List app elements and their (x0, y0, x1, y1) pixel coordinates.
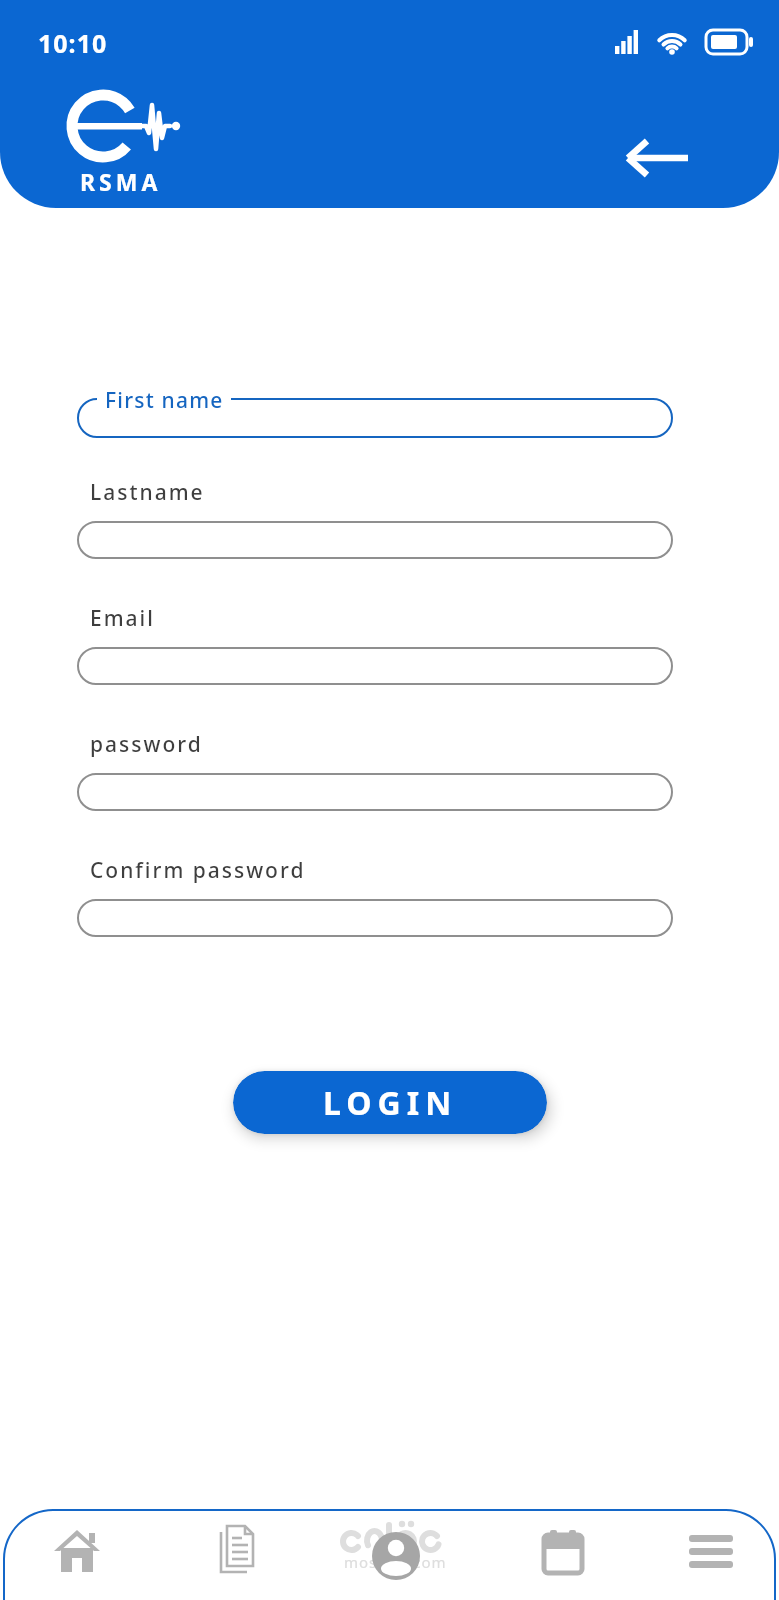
staticText: LOGIN (323, 1081, 458, 1125)
staticText: password (90, 730, 203, 759)
button[interactable] (215, 1524, 263, 1572)
button[interactable] (77, 899, 673, 937)
staticText: Lastname (90, 478, 205, 507)
button[interactable] (53, 1526, 101, 1574)
button[interactable] (689, 1535, 737, 1583)
staticText: mostaql.com (344, 1552, 447, 1572)
button[interactable] (77, 647, 673, 685)
button[interactable] (77, 398, 673, 438)
button[interactable] (77, 773, 673, 811)
button[interactable] (77, 521, 673, 559)
button[interactable] (610, 128, 705, 188)
button[interactable]: LOGIN (233, 1071, 547, 1134)
staticText: First name (105, 386, 224, 415)
button[interactable] (542, 1530, 590, 1578)
staticText: 10:10 (38, 26, 108, 60)
staticText: Email (90, 604, 155, 633)
button[interactable] (372, 1532, 420, 1580)
staticText: Confirm password (90, 856, 306, 885)
staticText: RSMA (80, 166, 162, 197)
